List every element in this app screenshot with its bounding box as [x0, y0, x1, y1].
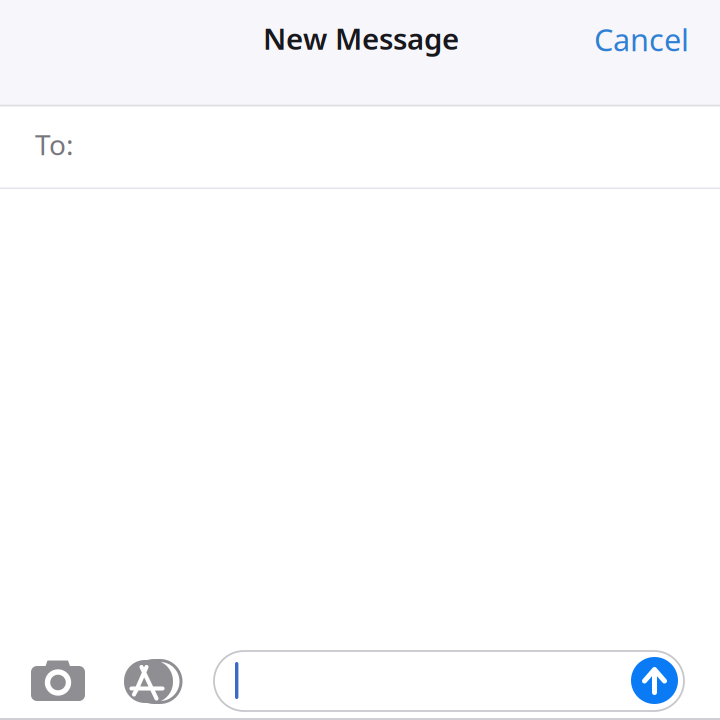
- button[interactable]: Send: [631, 657, 678, 704]
- button[interactable]: Camera: [29, 656, 89, 704]
- button[interactable]: Apps: [110, 653, 180, 705]
- button[interactable]: iMessage: [214, 651, 684, 711]
- button[interactable]: Cancel: [580, 5, 703, 74]
- button[interactable]: To:: [0, 103, 720, 186]
- staticText: To:: [35, 126, 74, 163]
- staticText: Cancel: [594, 19, 689, 60]
- staticText: New Message: [263, 19, 459, 58]
